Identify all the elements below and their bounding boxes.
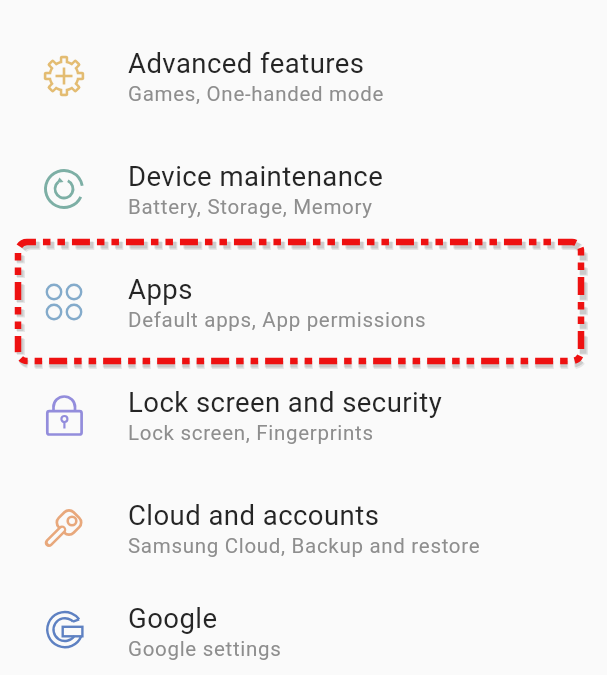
staticText: Cloud and accounts <box>128 499 380 531</box>
button[interactable]: Lock screen and security <box>0 357 607 470</box>
staticText: Default apps, App permissions <box>128 308 427 332</box>
staticText: Apps <box>128 273 193 305</box>
staticText: Advanced features <box>128 47 365 79</box>
staticText: Games, One-handed mode <box>128 82 384 106</box>
button[interactable]: Google <box>0 583 607 675</box>
button[interactable]: Cloud and accounts <box>0 470 607 583</box>
staticText: Google settings <box>128 637 282 661</box>
staticText: Lock screen, Fingerprints <box>128 421 374 445</box>
button[interactable]: Device maintenance <box>0 131 607 244</box>
staticText: Samsung Cloud, Backup and restore <box>128 534 481 558</box>
staticText: Lock screen and security <box>128 386 443 418</box>
staticText: Battery, Storage, Memory <box>128 195 373 219</box>
button[interactable]: Advanced features <box>0 18 607 131</box>
staticText: Google <box>128 602 218 634</box>
staticText: Device maintenance <box>128 160 384 192</box>
button[interactable]: Apps <box>0 244 607 357</box>
